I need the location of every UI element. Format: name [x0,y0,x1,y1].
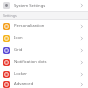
staticText: System Settings [14,3,79,9]
staticText: Locker [14,71,79,77]
staticText: Icon [14,35,79,41]
button[interactable]: System Settings [0,0,88,11]
staticText: Settings [3,13,17,18]
button[interactable]: Notification dots [0,56,88,68]
button[interactable]: Icon [0,32,88,44]
button[interactable]: Locker [0,68,88,80]
staticText: Notification dots [14,59,79,65]
staticText: Grid [14,47,79,53]
button[interactable]: Advanced [0,80,88,88]
staticText: Personalization [14,23,79,29]
button[interactable]: Personalization [0,20,88,32]
staticText: Advanced [14,81,79,87]
button[interactable]: Grid [0,44,88,56]
